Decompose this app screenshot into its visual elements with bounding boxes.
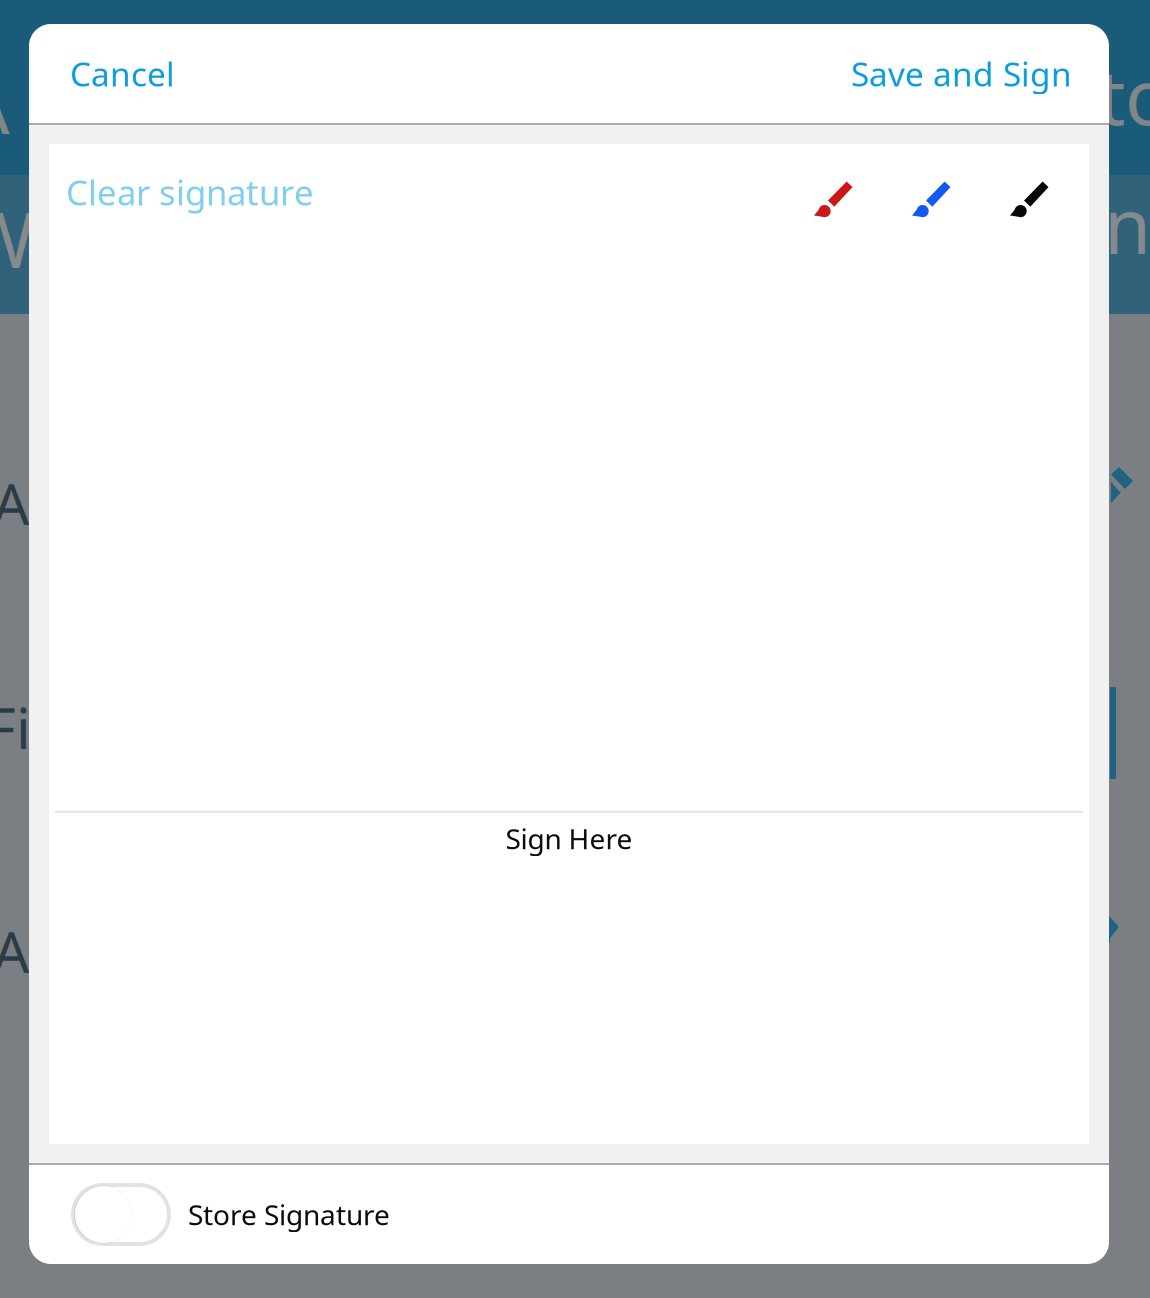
button[interactable]: Store Signature bbox=[29, 1165, 1109, 1264]
staticText: Store Signature bbox=[188, 1196, 390, 1233]
button[interactable]: Red ink bbox=[814, 164, 853, 219]
staticText: Fi bbox=[0, 689, 31, 765]
staticText: Save and Sign bbox=[851, 51, 1072, 96]
staticText: n bbox=[1104, 174, 1150, 275]
staticText: to bbox=[1098, 45, 1150, 146]
staticText: Cancel bbox=[70, 51, 175, 96]
staticText: W bbox=[0, 188, 35, 289]
staticText: A bbox=[0, 913, 30, 989]
button[interactable]: Save and Sign bbox=[814, 23, 1109, 123]
staticText: Clear signature bbox=[66, 169, 314, 215]
button[interactable]: Clear signature bbox=[49, 155, 331, 229]
staticText: Sign Here bbox=[505, 820, 632, 857]
button[interactable]: Cancel bbox=[29, 23, 216, 123]
button[interactable]: Blue ink bbox=[912, 164, 951, 219]
staticText: A bbox=[0, 54, 10, 155]
button[interactable]: Black ink bbox=[1010, 164, 1049, 219]
staticText: A bbox=[0, 465, 30, 541]
